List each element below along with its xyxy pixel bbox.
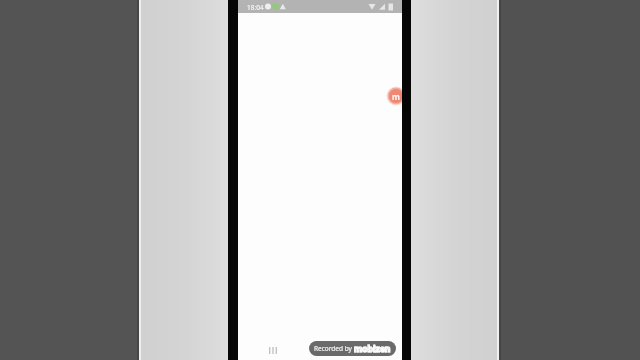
staticText: mobizen <box>354 343 391 355</box>
button[interactable]: Recorded by <box>309 341 396 356</box>
staticText: Recorded by <box>314 344 354 353</box>
staticText: m <box>392 91 400 102</box>
button[interactable]: m <box>386 86 406 106</box>
button[interactable] <box>268 346 280 355</box>
staticText: 18:04 <box>247 3 264 12</box>
